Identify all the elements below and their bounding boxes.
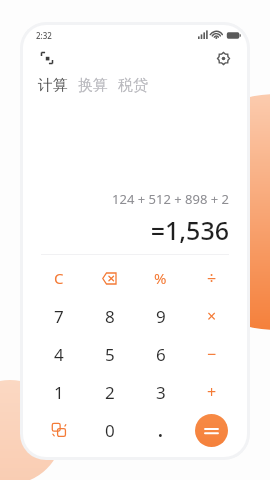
staticText: 税贷 — [118, 76, 148, 95]
button[interactable]: 7 — [33, 297, 84, 335]
staticText: 换算 — [78, 76, 108, 95]
staticText: × — [207, 305, 217, 327]
staticText: =1,536 — [150, 213, 229, 247]
staticText: 2:32 — [36, 30, 52, 41]
staticText: 9 — [156, 305, 166, 328]
staticText: 8 — [105, 305, 115, 328]
staticText: − — [207, 343, 217, 365]
button[interactable]: 1 — [33, 373, 84, 411]
staticText: 计算 — [38, 76, 68, 95]
button[interactable]: 5 — [84, 335, 135, 373]
staticText: 5 — [105, 343, 115, 366]
button[interactable]: − — [186, 335, 237, 373]
button[interactable]: 6 — [135, 335, 186, 373]
staticText: 7 — [54, 305, 64, 328]
button[interactable]: 计算 — [37, 74, 69, 97]
button[interactable]: % — [135, 259, 186, 297]
button[interactable]: + — [186, 373, 237, 411]
button[interactable]: Fullscreen — [36, 47, 58, 69]
staticText: 3 — [156, 381, 166, 404]
button[interactable]: 3 — [135, 373, 186, 411]
button[interactable] — [195, 414, 228, 447]
button[interactable]: 8 — [84, 297, 135, 335]
staticText: 2 — [105, 381, 115, 404]
button[interactable]: Backspace — [84, 259, 135, 297]
button[interactable]: 换算 — [77, 74, 109, 97]
button[interactable]: 0 — [84, 411, 135, 449]
button[interactable]: 9 — [135, 297, 186, 335]
staticText: % — [154, 268, 167, 288]
staticText: ÷ — [207, 267, 217, 289]
staticText: . — [158, 419, 163, 442]
button[interactable]: C — [33, 259, 84, 297]
button[interactable]: Settings — [212, 47, 234, 69]
button[interactable]: 税贷 — [117, 74, 149, 97]
staticText: 124 + 512 + 898 + 2 — [112, 190, 229, 208]
staticText: 6 — [156, 343, 166, 366]
button[interactable]: 2 — [84, 373, 135, 411]
staticText: 0 — [105, 419, 115, 442]
button[interactable]: . — [135, 411, 186, 449]
button[interactable]: Multi window — [33, 411, 84, 449]
staticText: C — [54, 268, 64, 288]
button[interactable]: 4 — [33, 335, 84, 373]
staticText: 1 — [54, 381, 64, 404]
staticText: + — [207, 381, 217, 403]
button[interactable]: × — [186, 297, 237, 335]
staticText: 4 — [54, 343, 64, 366]
button[interactable]: ÷ — [186, 259, 237, 297]
